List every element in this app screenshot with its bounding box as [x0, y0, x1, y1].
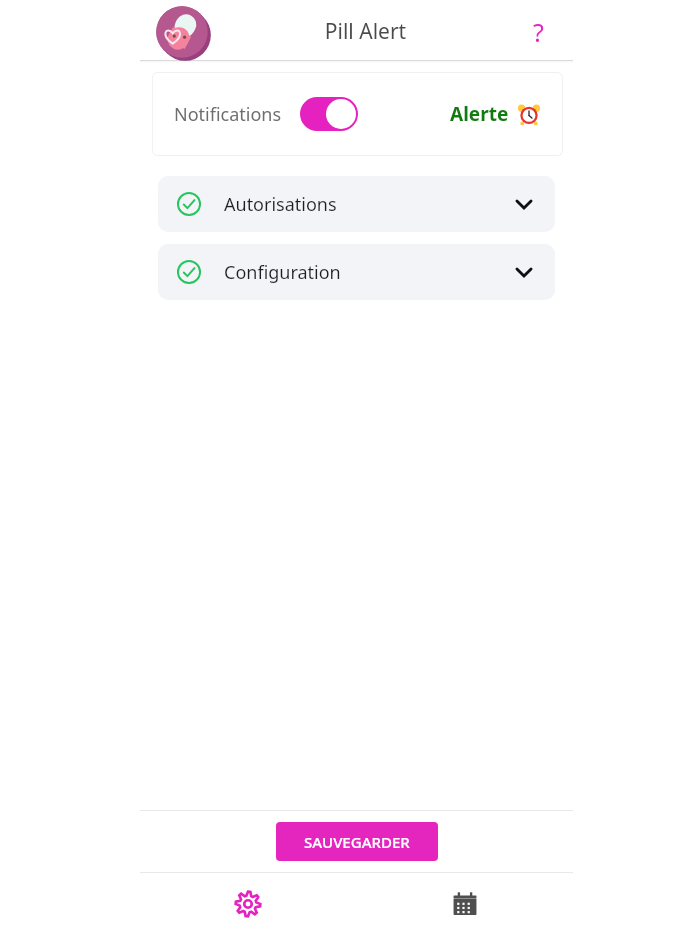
- button[interactable]: Configuration: [158, 244, 555, 300]
- button[interactable]: Help: [521, 15, 555, 49]
- staticText: Notifications: [174, 102, 282, 127]
- staticText: ?: [533, 15, 544, 49]
- staticText: SAUVEGARDER: [304, 832, 410, 852]
- staticText: Autorisations: [224, 192, 337, 217]
- button[interactable]: Settings: [226, 882, 270, 926]
- staticText: Configuration: [224, 260, 341, 285]
- button[interactable]: SAUVEGARDER: [276, 822, 438, 861]
- button[interactable]: Autorisations: [158, 176, 555, 232]
- staticText: Alerte: [450, 101, 509, 127]
- button[interactable]: Calendar: [443, 882, 487, 926]
- button[interactable]: Notifications toggle: [300, 97, 358, 131]
- staticText: Pill Alert: [210, 17, 521, 46]
- other: Alarm: [517, 102, 541, 126]
